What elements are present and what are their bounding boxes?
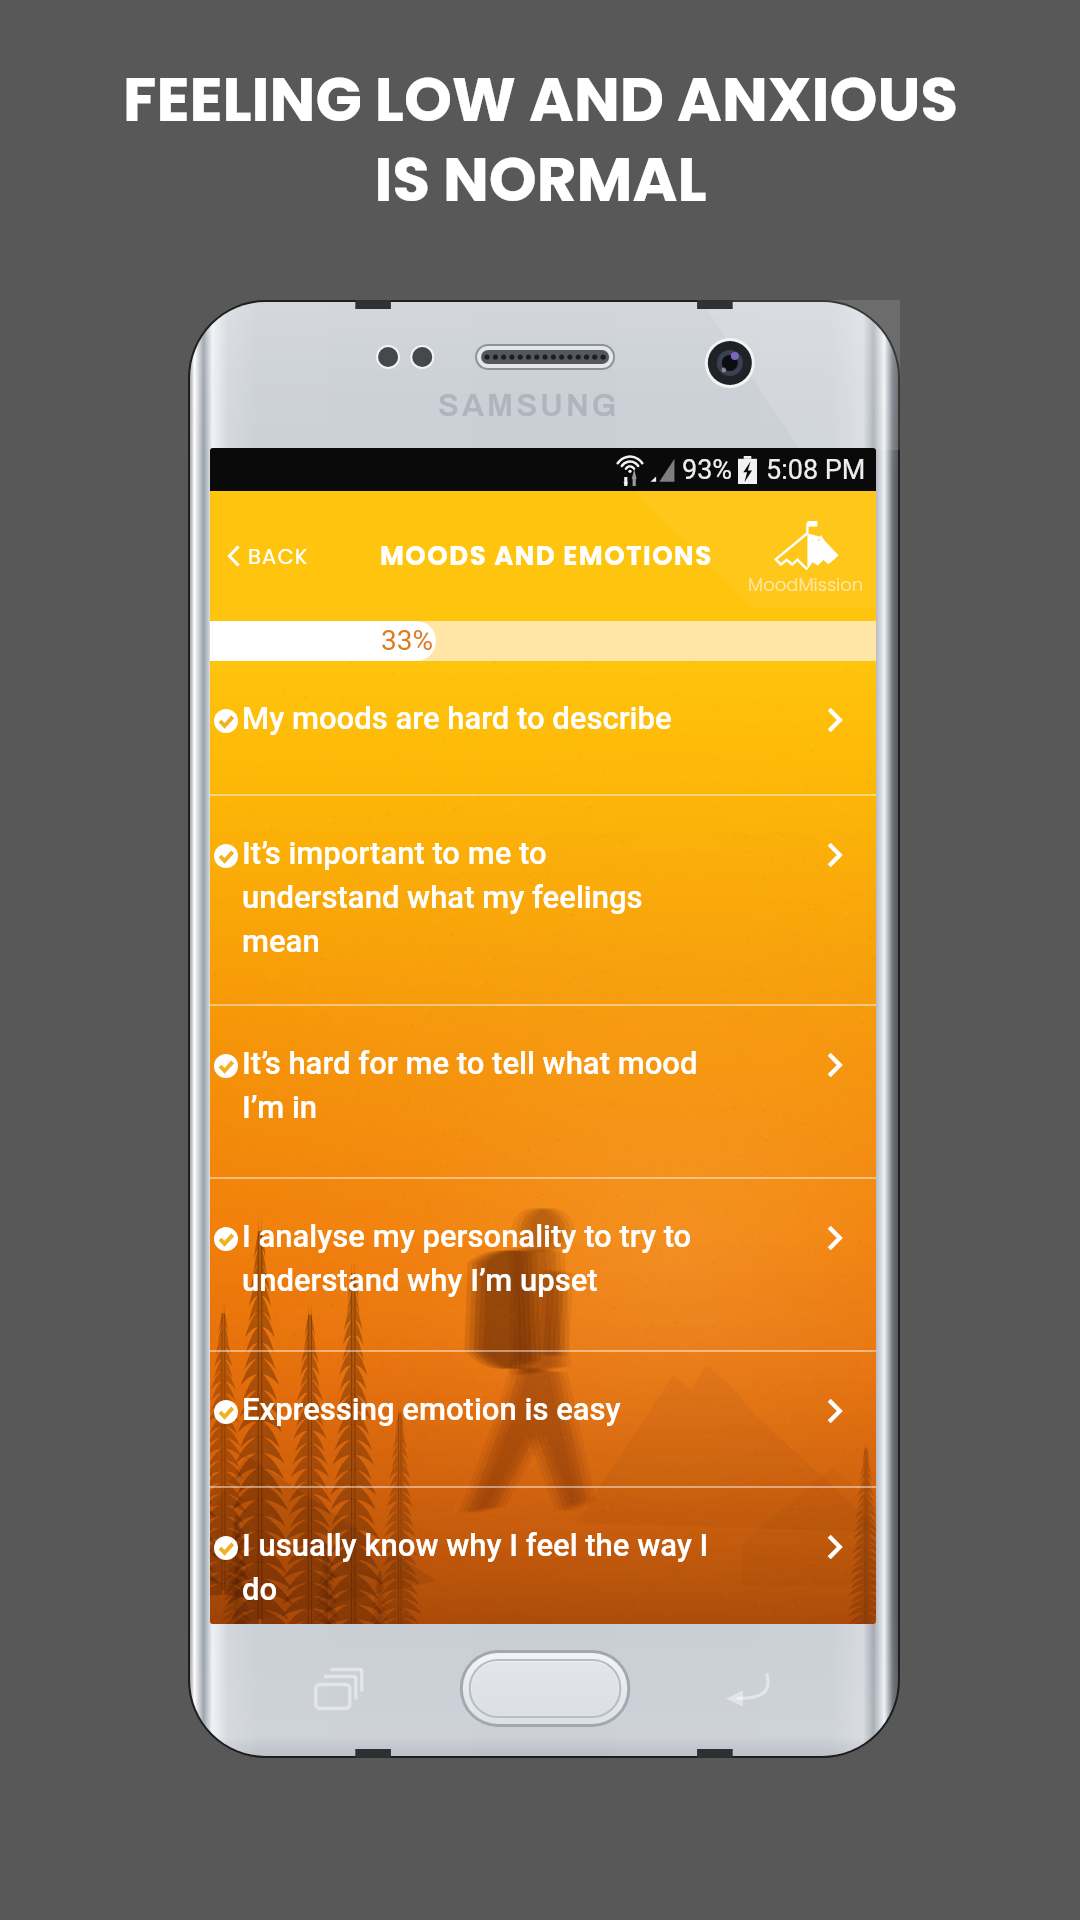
button[interactable]: I analyse my personality to try to under… [210, 1179, 876, 1350]
button[interactable]: BACK [210, 491, 323, 621]
staticText: SAMSUNG [438, 389, 620, 423]
button[interactable]: It’s important to me to understand what … [210, 796, 876, 1004]
staticText: It’s hard for me to tell what mood I’m i… [242, 1045, 710, 1125]
staticText: It’s important to me to understand what … [242, 835, 710, 959]
button[interactable]: I usually know why I feel the way I do [210, 1488, 876, 1624]
button[interactable]: My moods are hard to describe [210, 661, 876, 794]
staticText: MoodMission [748, 572, 864, 597]
button[interactable]: Expressing emotion is easy [210, 1352, 876, 1486]
staticText: MOODS AND EMOTIONS [380, 538, 713, 574]
staticText: I usually know why I feel the way I do [242, 1527, 710, 1607]
staticText: Expressing emotion is easy [242, 1391, 710, 1427]
staticText: 33% [381, 624, 433, 657]
staticText: 93% [682, 454, 733, 486]
button[interactable]: It’s hard for me to tell what mood I’m i… [210, 1006, 876, 1177]
staticText: BACK [248, 542, 309, 571]
staticText: My moods are hard to describe [242, 700, 710, 736]
staticText: I analyse my personality to try to under… [242, 1218, 710, 1298]
staticText: 5:08 PM [766, 454, 866, 486]
button[interactable]: MoodMission [744, 519, 868, 597]
staticText: FEELING LOW AND ANXIOUS IS NORMAL [123, 57, 958, 222]
